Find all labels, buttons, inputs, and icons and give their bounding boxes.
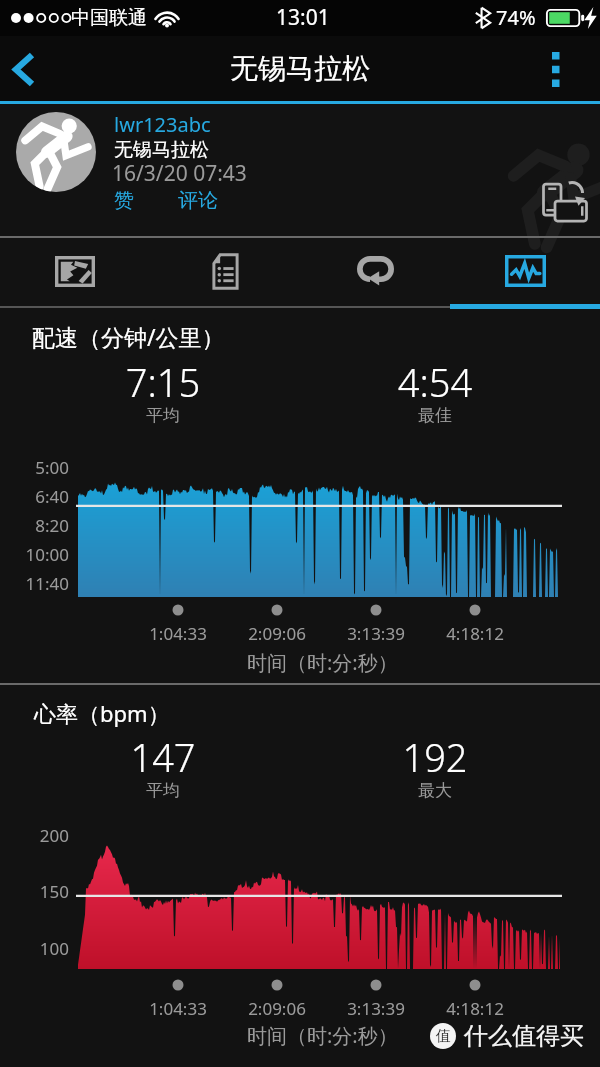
staticText: 147 [53, 731, 273, 783]
staticText: 16/3/20 07:43 [112, 159, 247, 188]
staticText: 值 [436, 1027, 451, 1046]
staticText: 心率（bpm） [34, 698, 170, 728]
button[interactable]: Rotate screen [540, 178, 590, 228]
staticText: 赞 [114, 188, 134, 213]
staticText: 评论 [178, 188, 218, 213]
staticText: 配速（分钟/公里） [32, 321, 225, 352]
staticText: 3:13:39 [326, 622, 426, 645]
staticText: 10:00 [0, 543, 69, 566]
staticText: lwr123abc [114, 111, 211, 138]
staticText: 中国联通 [71, 6, 147, 30]
staticText: 什么值得买 [464, 1021, 584, 1051]
staticText: 100 [0, 937, 69, 960]
button[interactable]: 评论 [175, 188, 221, 213]
staticText: 4:54 [325, 356, 545, 408]
staticText: 150 [0, 880, 69, 903]
staticText: 4:18:12 [425, 997, 525, 1020]
staticText: 时间（时:分:秒） [247, 649, 398, 676]
staticText: 无锡马拉松 [230, 51, 370, 86]
staticText: 7:15 [53, 356, 273, 408]
button[interactable]: Laps [300, 238, 450, 306]
staticText: 5:00 [0, 456, 69, 479]
staticText: 最佳 [325, 405, 545, 426]
staticText: 无锡马拉松 [114, 138, 209, 162]
staticText: 13:01 [276, 3, 330, 32]
staticText: 1:04:33 [128, 997, 228, 1020]
staticText: 192 [325, 731, 545, 783]
staticText: 1:04:33 [128, 622, 228, 645]
staticText: 2:09:06 [227, 997, 327, 1020]
button[interactable]: Details [150, 238, 300, 306]
button[interactable]: More options [540, 36, 600, 102]
staticText: 11:40 [0, 572, 69, 595]
staticText: 4:18:12 [425, 622, 525, 645]
staticText: 时间（时:分:秒） [247, 1022, 398, 1049]
staticText: 最大 [325, 780, 545, 801]
staticText: 6:40 [0, 485, 69, 508]
button[interactable]: Map [0, 238, 150, 306]
staticText: 平均 [53, 780, 273, 801]
staticText: 8:20 [0, 514, 69, 537]
staticText: 3:13:39 [326, 997, 426, 1020]
staticText: 2:09:06 [227, 622, 327, 645]
staticText: 74% [496, 4, 536, 31]
staticText: 平均 [53, 405, 273, 426]
staticText: 200 [0, 824, 69, 847]
button[interactable]: Back [0, 36, 60, 102]
button[interactable]: 赞 [111, 188, 137, 213]
button[interactable]: Charts [450, 238, 600, 306]
